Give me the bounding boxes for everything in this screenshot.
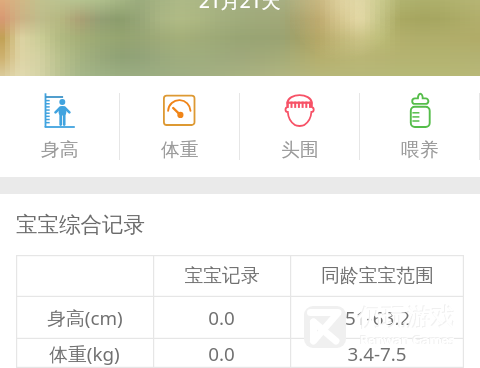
staticText: 身高(cm) xyxy=(47,305,123,331)
staticText: Renwan Games xyxy=(360,331,455,349)
staticText: 宝宝记录 xyxy=(184,264,260,288)
button[interactable]: 宝宝记录 xyxy=(16,255,464,297)
staticText: 3.4-7.5 xyxy=(347,341,407,367)
button[interactable]: 喂养 xyxy=(360,76,480,177)
staticText: 喂养 xyxy=(401,138,439,162)
staticText: 体重(kg) xyxy=(49,341,120,367)
staticText: 0.0 xyxy=(208,341,235,367)
staticText: 51-63.2 xyxy=(345,305,410,331)
staticText: Renwan Games xyxy=(359,330,454,348)
staticText: 同龄宝宝范围 xyxy=(321,264,434,288)
button[interactable]: 体重 xyxy=(120,76,240,177)
staticText: 0.0 xyxy=(208,305,235,331)
staticText: 头围 xyxy=(281,138,319,162)
button[interactable]: 身高 xyxy=(0,76,120,177)
staticText: 宝宝综合记录 xyxy=(16,211,145,238)
staticText: 仍玩游戏 xyxy=(357,301,456,332)
button[interactable]: 体重(kg) xyxy=(16,339,464,368)
staticText: 仍玩游戏 xyxy=(358,302,457,333)
button[interactable]: 头围 xyxy=(240,76,360,177)
staticText: 21月21天 xyxy=(199,0,281,14)
staticText: 身高 xyxy=(41,138,79,162)
button[interactable]: 身高(cm) xyxy=(16,297,464,339)
staticText: 体重 xyxy=(161,138,199,162)
